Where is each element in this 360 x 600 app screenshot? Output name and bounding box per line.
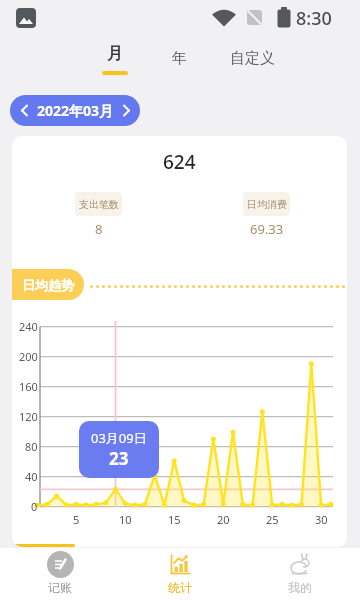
staticText: 240 xyxy=(19,319,38,334)
staticText: 8:30 xyxy=(296,6,332,31)
staticText: 23 xyxy=(109,447,129,470)
staticText: 统计 xyxy=(168,580,192,595)
staticText: 自定义 xyxy=(230,49,275,68)
staticText: 25 xyxy=(266,512,279,526)
staticText: 40 xyxy=(25,469,38,484)
staticText: 20 xyxy=(217,512,230,526)
staticText: 69.33 xyxy=(250,220,284,238)
staticText: 03月09日 xyxy=(91,429,147,447)
staticText: 月 xyxy=(107,44,123,64)
staticText: 624 xyxy=(163,149,196,175)
button[interactable]: 我的 xyxy=(240,548,360,600)
staticText: 年 xyxy=(172,49,187,68)
staticText: 200 xyxy=(19,349,38,364)
button[interactable]: 记账 xyxy=(0,548,120,600)
staticText: 8 xyxy=(95,220,103,238)
button[interactable]: 自定义 xyxy=(225,44,279,72)
staticText: 30 xyxy=(315,512,328,526)
staticText: 80 xyxy=(25,439,38,454)
staticText: 10 xyxy=(119,512,132,526)
button[interactable]: 年 xyxy=(160,44,198,72)
staticText: 支出笔数 xyxy=(79,198,119,211)
staticText: 5 xyxy=(73,512,80,526)
staticText: 日均消费 xyxy=(247,198,287,211)
staticText: 160 xyxy=(19,379,38,394)
button[interactable]: 2022年03月 xyxy=(10,95,140,126)
staticText: 我的 xyxy=(288,580,312,595)
staticText: 2022年03月 xyxy=(37,101,114,120)
staticText: 120 xyxy=(19,409,38,424)
staticText: 0 xyxy=(31,499,38,514)
button[interactable]: 月 xyxy=(95,42,135,75)
button[interactable]: 统计 xyxy=(120,548,240,600)
staticText: 记账 xyxy=(48,580,72,595)
staticText: 15 xyxy=(168,512,181,526)
staticText: 日均趋势 xyxy=(22,277,74,293)
